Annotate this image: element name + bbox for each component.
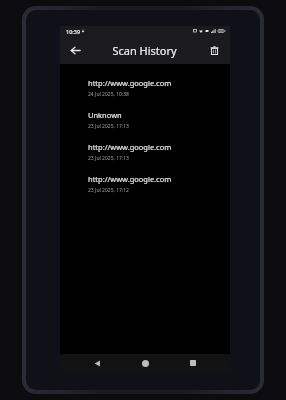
button[interactable]: Recent apps	[182, 354, 204, 372]
button[interactable]: http://www.google.com	[60, 136, 230, 168]
staticText: http://www.google.com	[88, 78, 172, 88]
button[interactable]: Delete history	[203, 39, 225, 61]
staticText: 23 Jul 2025, 17:13	[88, 123, 129, 130]
button[interactable]: http://www.google.com	[60, 168, 230, 200]
staticText: http://www.google.com	[88, 142, 172, 152]
staticText: Unknown	[88, 110, 122, 120]
staticText: 10:39	[66, 28, 81, 35]
button[interactable]: Home	[134, 354, 156, 372]
button[interactable]: Back	[64, 39, 86, 61]
staticText: 24 Jul 2025, 10:38	[88, 91, 129, 98]
staticText: Scan History	[112, 43, 177, 58]
staticText: http://www.google.com	[88, 174, 172, 184]
button[interactable]: Back	[86, 354, 108, 372]
button[interactable]: http://www.google.com	[60, 72, 230, 104]
staticText: 23 Jul 2025, 17:13	[88, 155, 129, 162]
staticText: 23 Jul 2025, 17:12	[88, 187, 129, 194]
button[interactable]: Unknown	[60, 104, 230, 136]
